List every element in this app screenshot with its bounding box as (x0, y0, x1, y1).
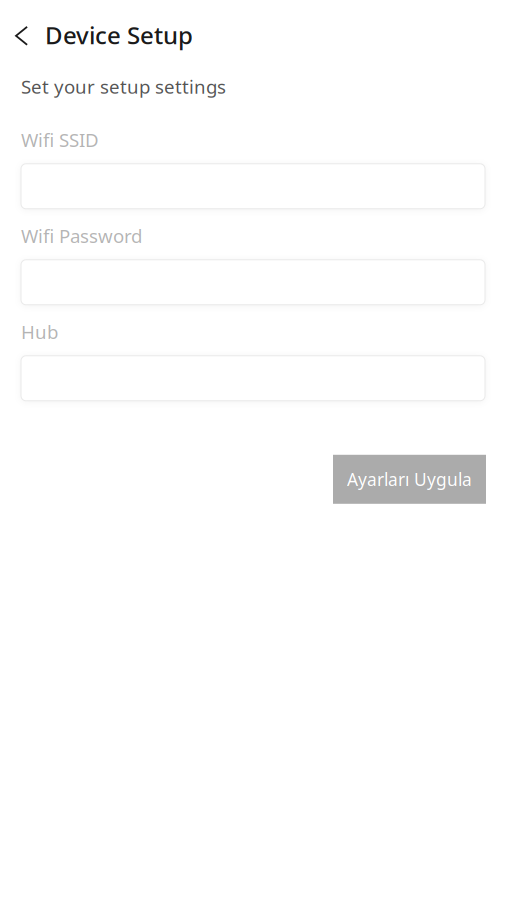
staticText: Device Setup (45, 19, 193, 51)
staticText: Set your setup settings (21, 74, 226, 99)
staticText: Wifi Password (21, 223, 142, 248)
staticText: Wifi SSID (21, 127, 99, 152)
button[interactable]: Back (6, 15, 37, 51)
staticText: Ayarları Uygula (347, 468, 472, 491)
staticText: Hub (21, 319, 58, 344)
button[interactable]: Ayarları Uygula (333, 455, 486, 504)
